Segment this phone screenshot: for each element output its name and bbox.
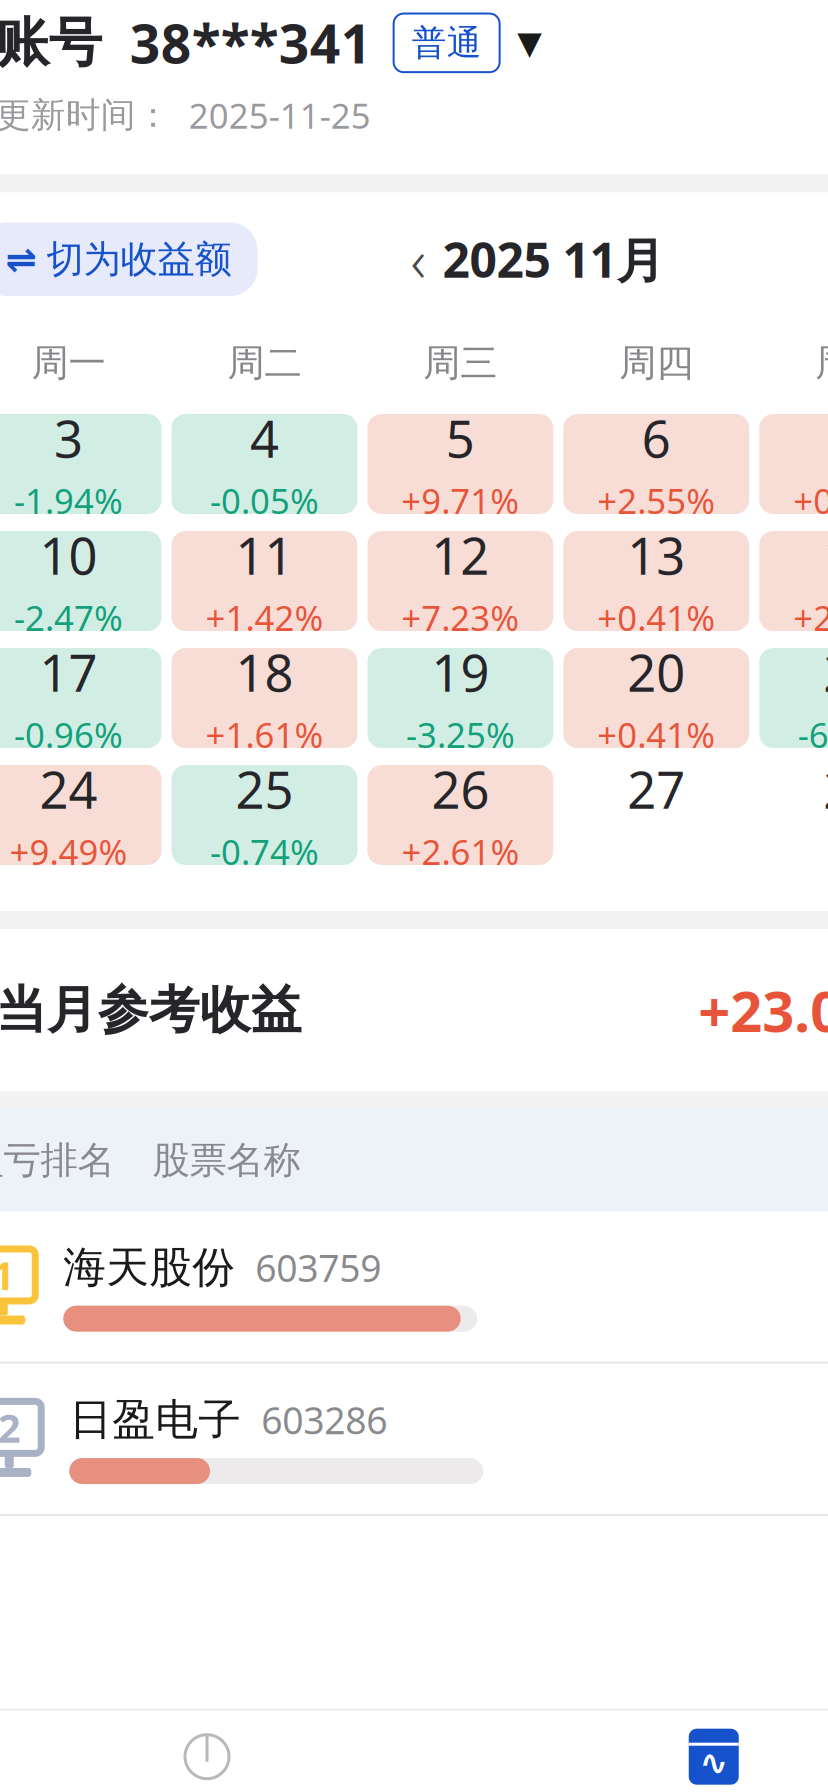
staticText: ▼ [517,25,542,61]
staticText: 20 [627,638,685,706]
staticText: 账号 [0,10,102,76]
staticText: 26 [431,755,489,823]
button[interactable]: ⇌ [0,222,258,296]
staticText: 10 [40,521,98,589]
button[interactable]: 27 [563,765,749,865]
button[interactable]: 14 [759,531,828,631]
staticText: 2025 11月 [442,227,664,291]
staticText: +2.55% [597,478,715,524]
button[interactable]: ∿ [460,1711,828,1792]
staticText: 周五 [815,340,828,386]
button[interactable]: Switch account [500,18,560,68]
button[interactable]: 7 [759,414,828,514]
staticText: +2.61% [401,829,519,875]
staticText: 4 [250,404,279,472]
staticText: 周一 [32,340,106,386]
staticText: 12 [431,521,489,589]
button[interactable]: 普通 [394,14,500,72]
button[interactable]: 13 [563,531,749,631]
staticText: 切为收益额 [47,236,232,282]
staticText: +0.41% [597,595,715,641]
staticText: 21 [823,638,828,706]
staticText: -0.05% [210,478,319,524]
button[interactable]: 5 [367,414,553,514]
staticText: 股票名称 [152,1137,300,1183]
staticText: ⇌ [6,238,37,280]
staticText: -6.68% [798,712,828,758]
button[interactable]: 18 [171,648,357,748]
button[interactable]: 6 [563,414,749,514]
staticText: ∿ [699,1743,728,1782]
staticText: 17 [40,638,98,706]
staticText: 周四 [619,340,693,386]
staticText: +0.41% [597,712,715,758]
button[interactable]: 26 [367,765,553,865]
button[interactable]: 20 [563,648,749,748]
staticText: 盈亏排名 [0,1137,114,1183]
staticText: 1 [0,1248,15,1301]
button[interactable]: Previous month [394,231,442,287]
staticText: 11 [235,521,293,589]
staticText: 24 [40,755,98,823]
staticText: 603286 [241,1395,387,1445]
staticText: 28 [823,755,828,823]
staticText: -2.47% [14,595,123,641]
staticText: 日盈电子 [69,1394,241,1446]
staticText: 18 [235,638,293,706]
staticText: 更新时间： [0,94,171,137]
staticText: 14 [823,521,828,589]
staticText: 603759 [235,1243,381,1292]
staticText: 5 [446,404,475,472]
staticText: 周三 [423,340,497,386]
staticText: -0.74% [210,829,319,875]
staticText: 海天股份 [63,1241,235,1294]
staticText: -1.94% [14,478,123,524]
staticText: +9.71% [401,478,519,524]
staticText: 38***341 [102,7,372,78]
staticText: -0.96% [14,712,123,758]
button[interactable]: 10 [0,531,161,631]
button[interactable]: 25 [171,765,357,865]
button[interactable]: 11 [171,531,357,631]
staticText: 普通 [412,22,482,64]
staticText: +23.06% [698,973,828,1047]
staticText: +7.23% [401,595,519,641]
staticText: 3 [54,404,83,472]
staticText: 25 [235,755,293,823]
button[interactable]: 17 [0,648,161,748]
staticText: 周二 [227,340,301,386]
staticText: 2025-11-25 [171,92,371,138]
staticText: +1.42% [205,595,323,641]
button[interactable]: 1 [0,1211,828,1362]
staticText: 13 [627,521,685,589]
button[interactable]: 2 [0,1364,828,1514]
button[interactable]: 3 [0,414,161,514]
button[interactable]: 28 [759,765,828,865]
staticText: ‹ [410,220,426,298]
staticText: +0.35% [793,478,828,524]
button[interactable]: 4 [171,414,357,514]
staticText: +9.49% [10,829,128,875]
staticText: 6 [642,404,671,472]
staticText: 27 [627,755,685,823]
staticText: 当月参考收益 [0,979,302,1041]
staticText: +2.46% [793,595,828,641]
button[interactable]: 12 [367,531,553,631]
button[interactable]: 24 [0,765,161,865]
button[interactable]: 资产分析 [0,1711,460,1792]
button[interactable]: 21 [759,648,828,748]
button[interactable]: 19 [367,648,553,748]
staticText: -3.25% [406,712,515,758]
staticText: 19 [431,638,489,706]
staticText: 2 [0,1401,21,1454]
staticText: +1.61% [205,712,323,758]
